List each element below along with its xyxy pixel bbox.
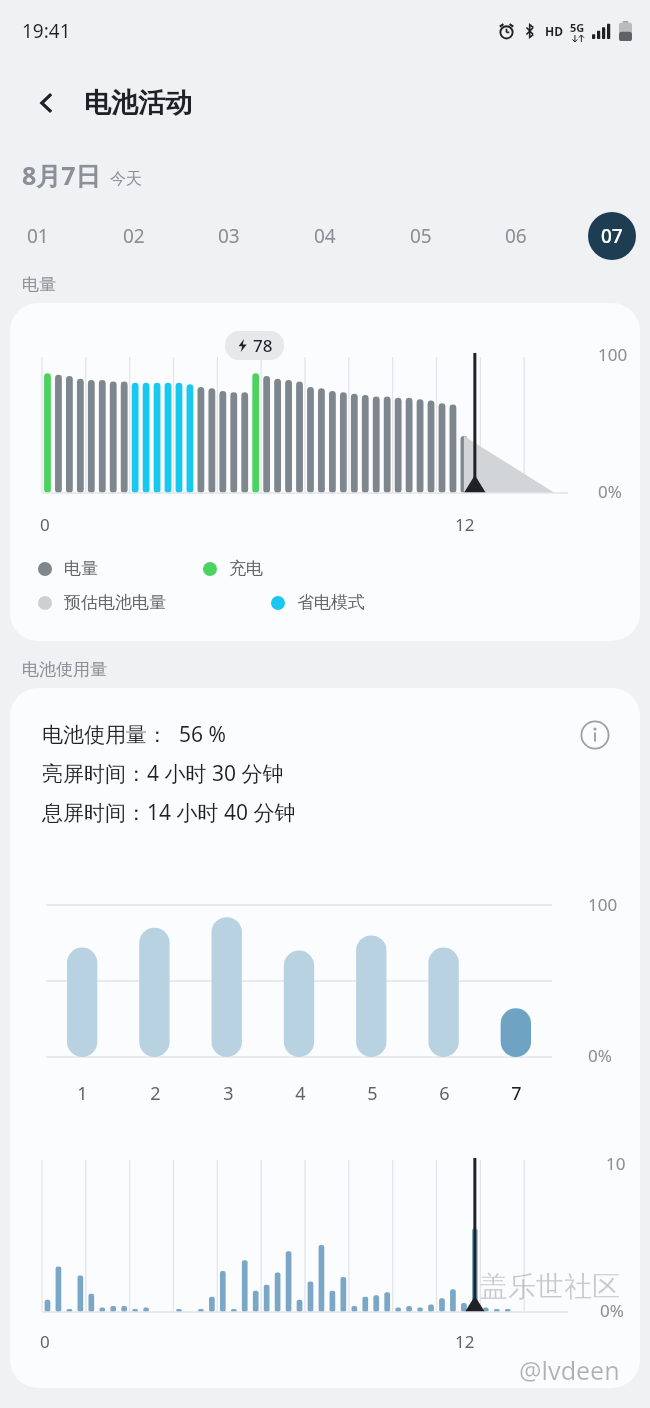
staticText: 12 (455, 513, 475, 536)
staticText: 19:41 (22, 18, 71, 44)
staticText: 03 (218, 223, 240, 249)
staticText: 电池使用量 (22, 659, 107, 680)
staticText: 7 (511, 1081, 522, 1106)
button[interactable]: 04 (301, 212, 349, 260)
staticText: HD (545, 23, 563, 39)
staticText: 01 (27, 223, 49, 249)
staticText: 6 (439, 1081, 450, 1106)
staticText: 05 (410, 223, 432, 249)
staticText: 8月7日 (22, 158, 101, 192)
staticText: 0 (40, 513, 50, 536)
staticText: 100 (588, 893, 618, 916)
staticText: 0% (600, 1299, 624, 1322)
staticText: 5 (367, 1081, 378, 1106)
staticText: 电量 (64, 558, 98, 579)
staticText: 4 (295, 1081, 306, 1106)
staticText: 今天 (110, 169, 142, 189)
staticText: 1 (77, 1081, 88, 1106)
button[interactable]: 02 (110, 212, 158, 260)
staticText: 盖乐世社区 (480, 1269, 620, 1304)
button[interactable]: Back (20, 76, 74, 130)
button[interactable]: 07 (588, 212, 636, 260)
staticText: 省电模式 (297, 592, 365, 613)
staticText: 息屏时间：14 小时 40 分钟 (42, 798, 296, 827)
staticText: 3 (223, 1081, 234, 1106)
button[interactable]: 01 (14, 212, 62, 260)
staticText: 78 (253, 334, 273, 357)
staticText: 06 (505, 223, 527, 249)
staticText: @lvdeen (519, 1353, 620, 1387)
staticText: 10 (606, 1152, 626, 1175)
button[interactable]: Information (572, 712, 618, 758)
button[interactable]: 06 (492, 212, 540, 260)
staticText: 电池活动 (84, 86, 192, 120)
staticText: 02 (123, 223, 145, 249)
staticText: 5G (570, 20, 585, 35)
staticText: 电池使用量： 56 % (42, 720, 226, 749)
button[interactable]: 05 (397, 212, 445, 260)
staticText: 0% (588, 1044, 612, 1067)
staticText: 100 (598, 343, 628, 366)
staticText: 0% (598, 480, 622, 503)
staticText: 2 (150, 1081, 161, 1106)
staticText: 预估电池电量 (64, 592, 166, 613)
staticText: 充电 (229, 558, 263, 579)
staticText: 亮屏时间：4 小时 30 分钟 (42, 759, 284, 788)
button[interactable]: 03 (205, 212, 253, 260)
staticText: 0 (40, 1330, 50, 1353)
staticText: 电量 (22, 274, 56, 295)
staticText: 04 (314, 223, 336, 249)
staticText: 07 (601, 223, 623, 249)
staticText: 12 (455, 1330, 475, 1353)
